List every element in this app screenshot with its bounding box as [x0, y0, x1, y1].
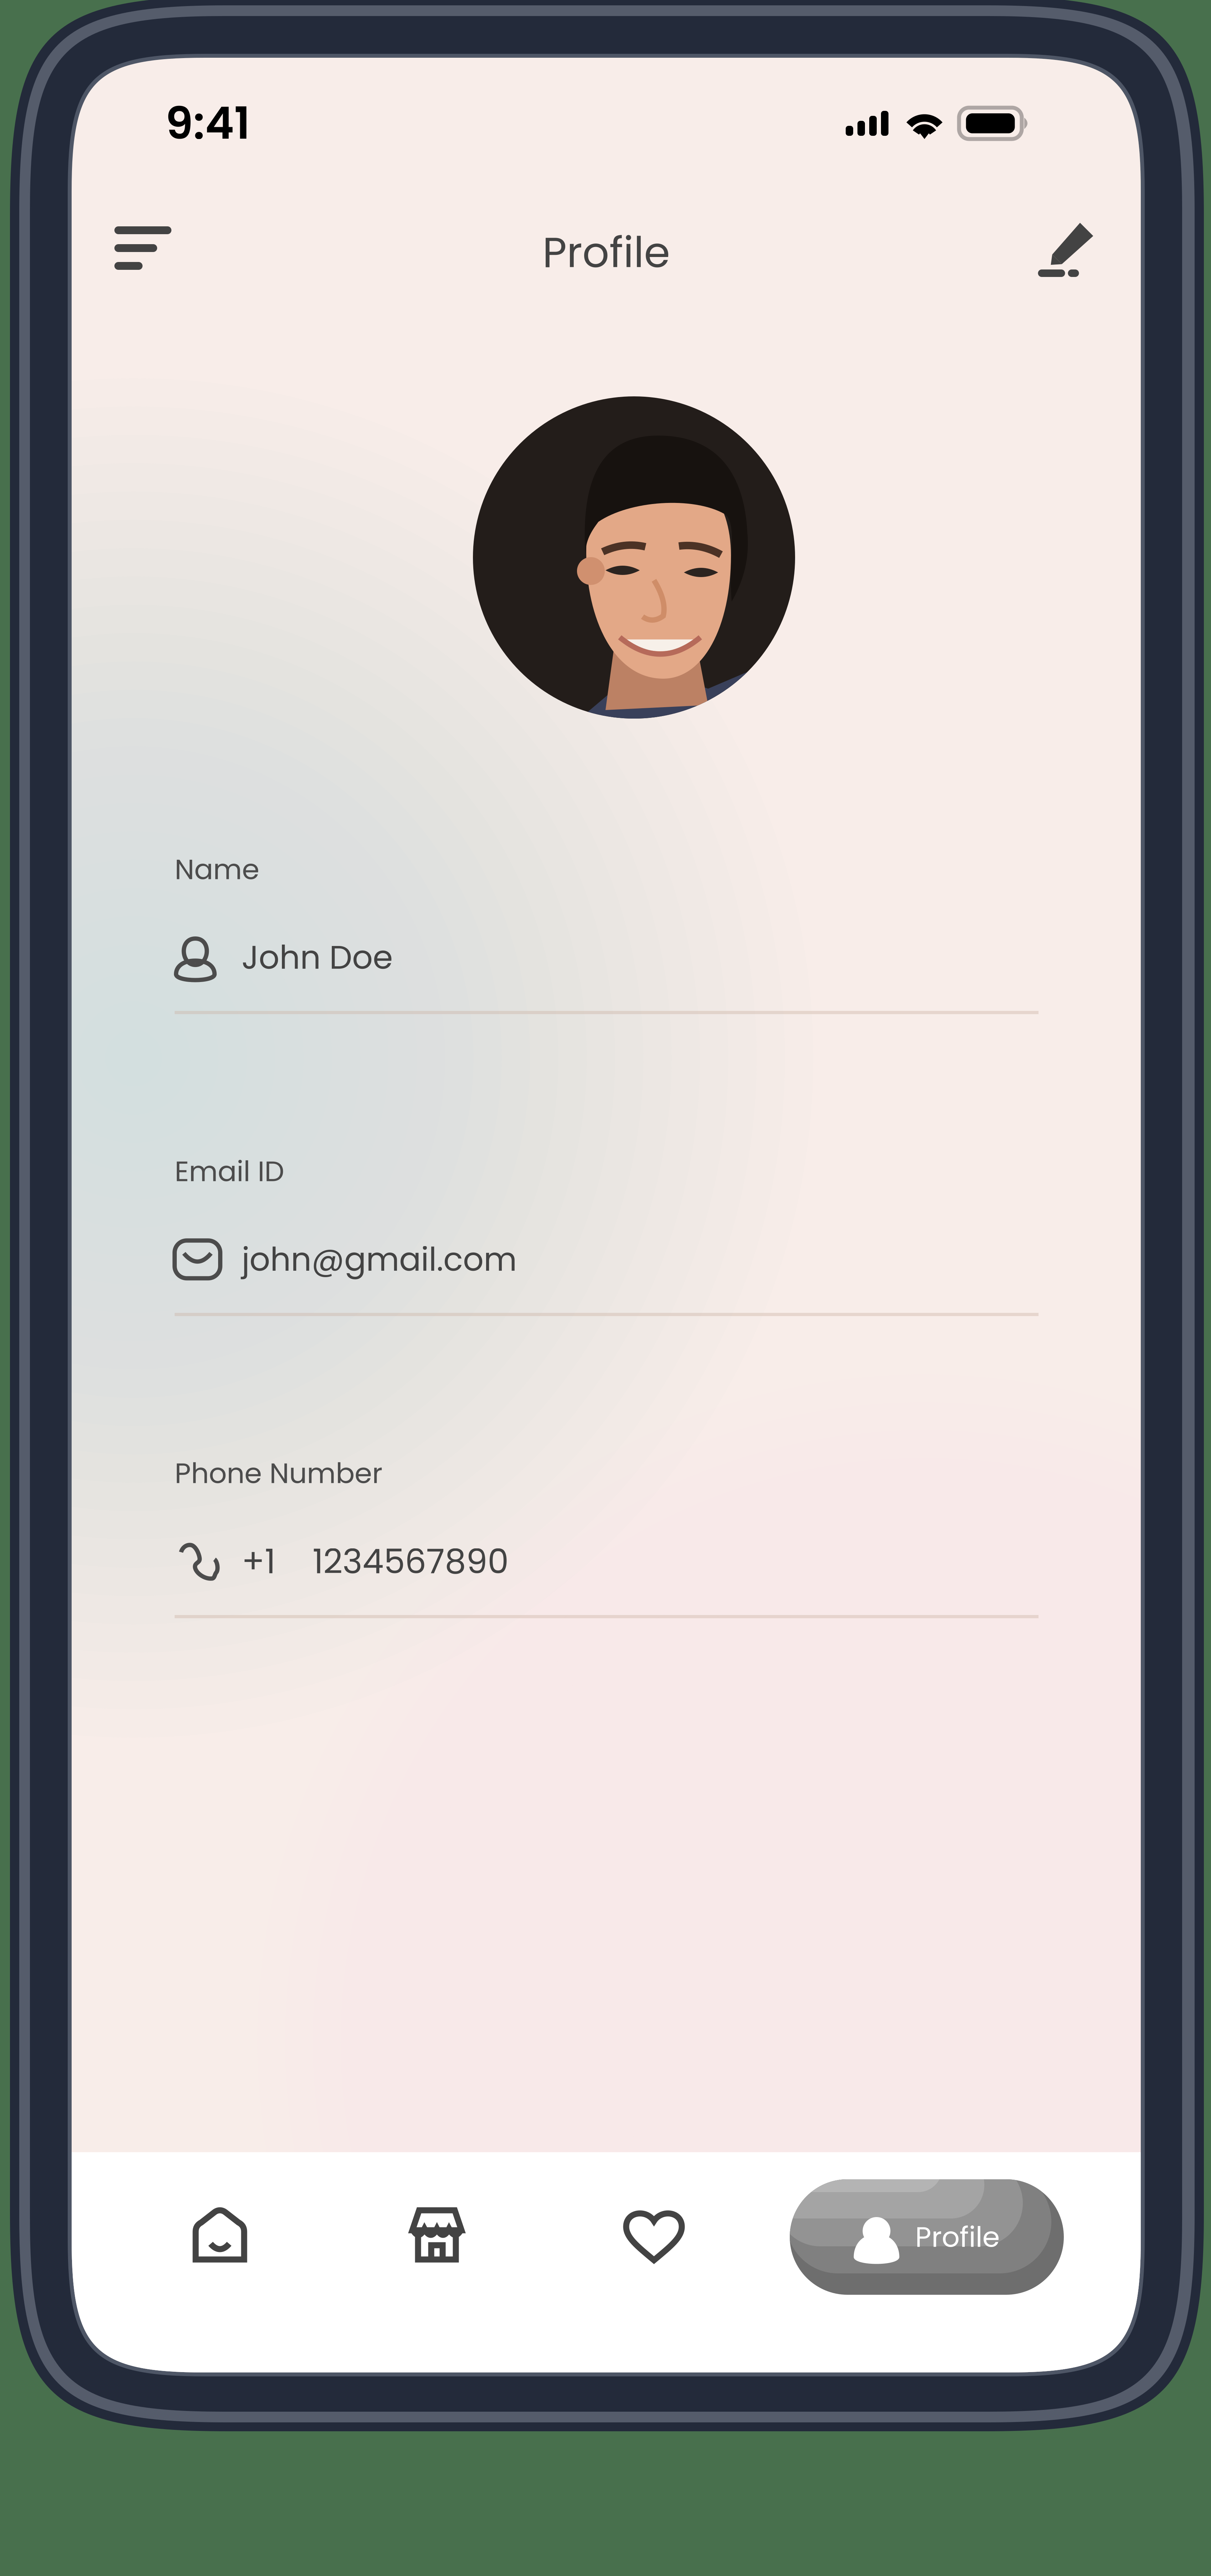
staticText: +1	[242, 1538, 275, 1585]
staticText: Name	[175, 850, 259, 889]
staticText: Email ID	[175, 1152, 284, 1191]
staticText: 1234567890	[313, 1538, 509, 1585]
button[interactable]: Edit profile	[1016, 207, 1115, 293]
button[interactable]: Home	[170, 2181, 270, 2288]
staticText: Profile	[542, 223, 670, 282]
button[interactable]: Profile	[790, 2179, 1064, 2295]
button[interactable]: Shop	[387, 2181, 487, 2288]
staticText: 9:41	[165, 92, 250, 154]
staticText: Phone Number	[175, 1454, 382, 1493]
button[interactable]: Favourites	[604, 2181, 704, 2288]
button[interactable]: Menu	[93, 205, 193, 291]
staticText: John Doe	[242, 935, 393, 980]
staticText: Profile	[915, 2217, 1000, 2257]
staticText: john@gmail.com	[242, 1237, 517, 1282]
